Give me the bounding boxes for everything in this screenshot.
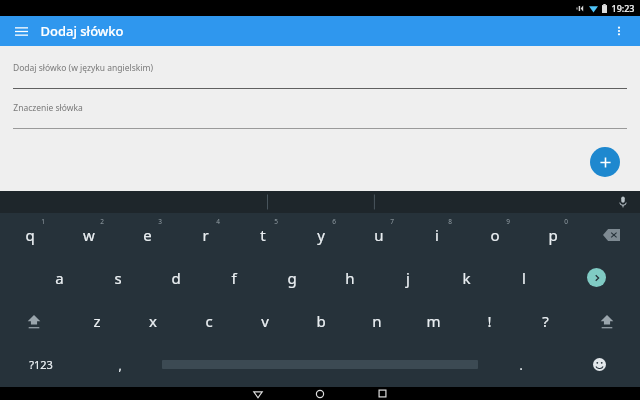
staticText: p [548,225,558,245]
staticText: m [426,311,441,331]
staticText: ? [542,311,549,331]
staticText: 7 [390,217,394,226]
button[interactable]: Back [238,387,278,400]
button[interactable]: b [293,299,349,342]
staticText: g [287,268,297,288]
button[interactable]: o [466,213,524,256]
staticText: h [345,268,355,288]
staticText: v [261,311,269,331]
staticText: 19:23 [611,2,635,14]
staticText: Dodaj słówko (w języku angielskim) [13,62,153,74]
staticText: 5 [274,217,278,226]
staticText: u [374,225,384,245]
button[interactable]: Emoji [558,342,640,387]
staticText: s [114,268,122,288]
button[interactable]: Shift [0,299,68,342]
staticText: l [522,268,526,288]
button[interactable]: . [483,342,558,387]
staticText: 8 [448,217,452,226]
button[interactable]: Backspace [582,213,640,256]
staticText: z [93,311,101,331]
button[interactable]: i [408,213,466,256]
staticText: a [55,268,64,288]
staticText: 2 [100,217,104,226]
staticText: 3 [158,217,162,226]
staticText: 1 [41,217,45,226]
staticText: q [25,225,35,245]
button[interactable]: Space [157,342,483,387]
button[interactable]: e [118,213,176,256]
staticText: b [316,311,326,331]
button[interactable]: c [181,299,237,342]
button[interactable]: Recent apps [362,387,402,400]
button[interactable]: j [379,256,437,299]
staticText: 6 [332,217,336,226]
button[interactable]: Znaczenie słówka [0,102,640,129]
staticText: . [519,357,523,373]
staticText: o [490,225,500,245]
staticText: x [149,311,157,331]
button[interactable]: p [524,213,582,256]
staticText: Dodaj słówko [40,22,124,40]
button[interactable]: More options [608,20,630,42]
staticText: f [231,268,237,288]
button[interactable]: h [321,256,379,299]
staticText: ! [487,311,492,331]
button[interactable]: y [292,213,350,256]
button[interactable]: w [59,213,118,256]
staticText: 4 [216,217,220,226]
button[interactable]: g [263,256,321,299]
staticText: 0 [564,217,568,226]
staticText: d [171,268,181,288]
staticText: Znaczenie słówka [13,102,83,114]
staticText: j [406,268,410,288]
staticText: k [462,268,471,288]
staticText: e [143,225,152,245]
button[interactable]: v [237,299,293,342]
staticText: n [372,311,382,331]
button[interactable]: m [405,299,461,342]
button[interactable]: k [437,256,495,299]
button[interactable]: q [0,213,59,256]
button[interactable]: Dodaj słówko (w języku angielskim) [0,62,640,89]
button[interactable]: l [495,256,553,299]
staticText: y [317,225,325,245]
button[interactable]: f [205,256,263,299]
button[interactable]: a [30,256,89,299]
staticText: r [202,225,209,245]
button[interactable]: z [68,299,125,342]
staticText: i [435,225,439,245]
button[interactable]: ?123 [0,342,82,387]
button[interactable]: r [176,213,234,256]
button[interactable]: x [125,299,181,342]
button[interactable]: t [234,213,292,256]
staticText: 9 [506,217,510,226]
button[interactable]: Voice input [615,194,631,210]
staticText: c [205,311,213,331]
button[interactable]: Enter [553,256,640,299]
staticText: t [260,225,266,245]
staticText: , [118,357,122,373]
staticText: ?123 [29,357,53,372]
button[interactable]: d [147,256,205,299]
button[interactable]: n [349,299,405,342]
button[interactable]: Open navigation drawer [10,20,32,42]
button[interactable]: ? [517,299,573,342]
button[interactable]: Home [300,387,340,400]
button[interactable]: , [82,342,157,387]
button[interactable]: u [350,213,408,256]
button[interactable]: Add word [590,147,620,177]
staticText: w [83,225,95,245]
button[interactable]: s [89,256,147,299]
button[interactable]: ! [461,299,517,342]
button[interactable]: Shift [573,299,640,342]
